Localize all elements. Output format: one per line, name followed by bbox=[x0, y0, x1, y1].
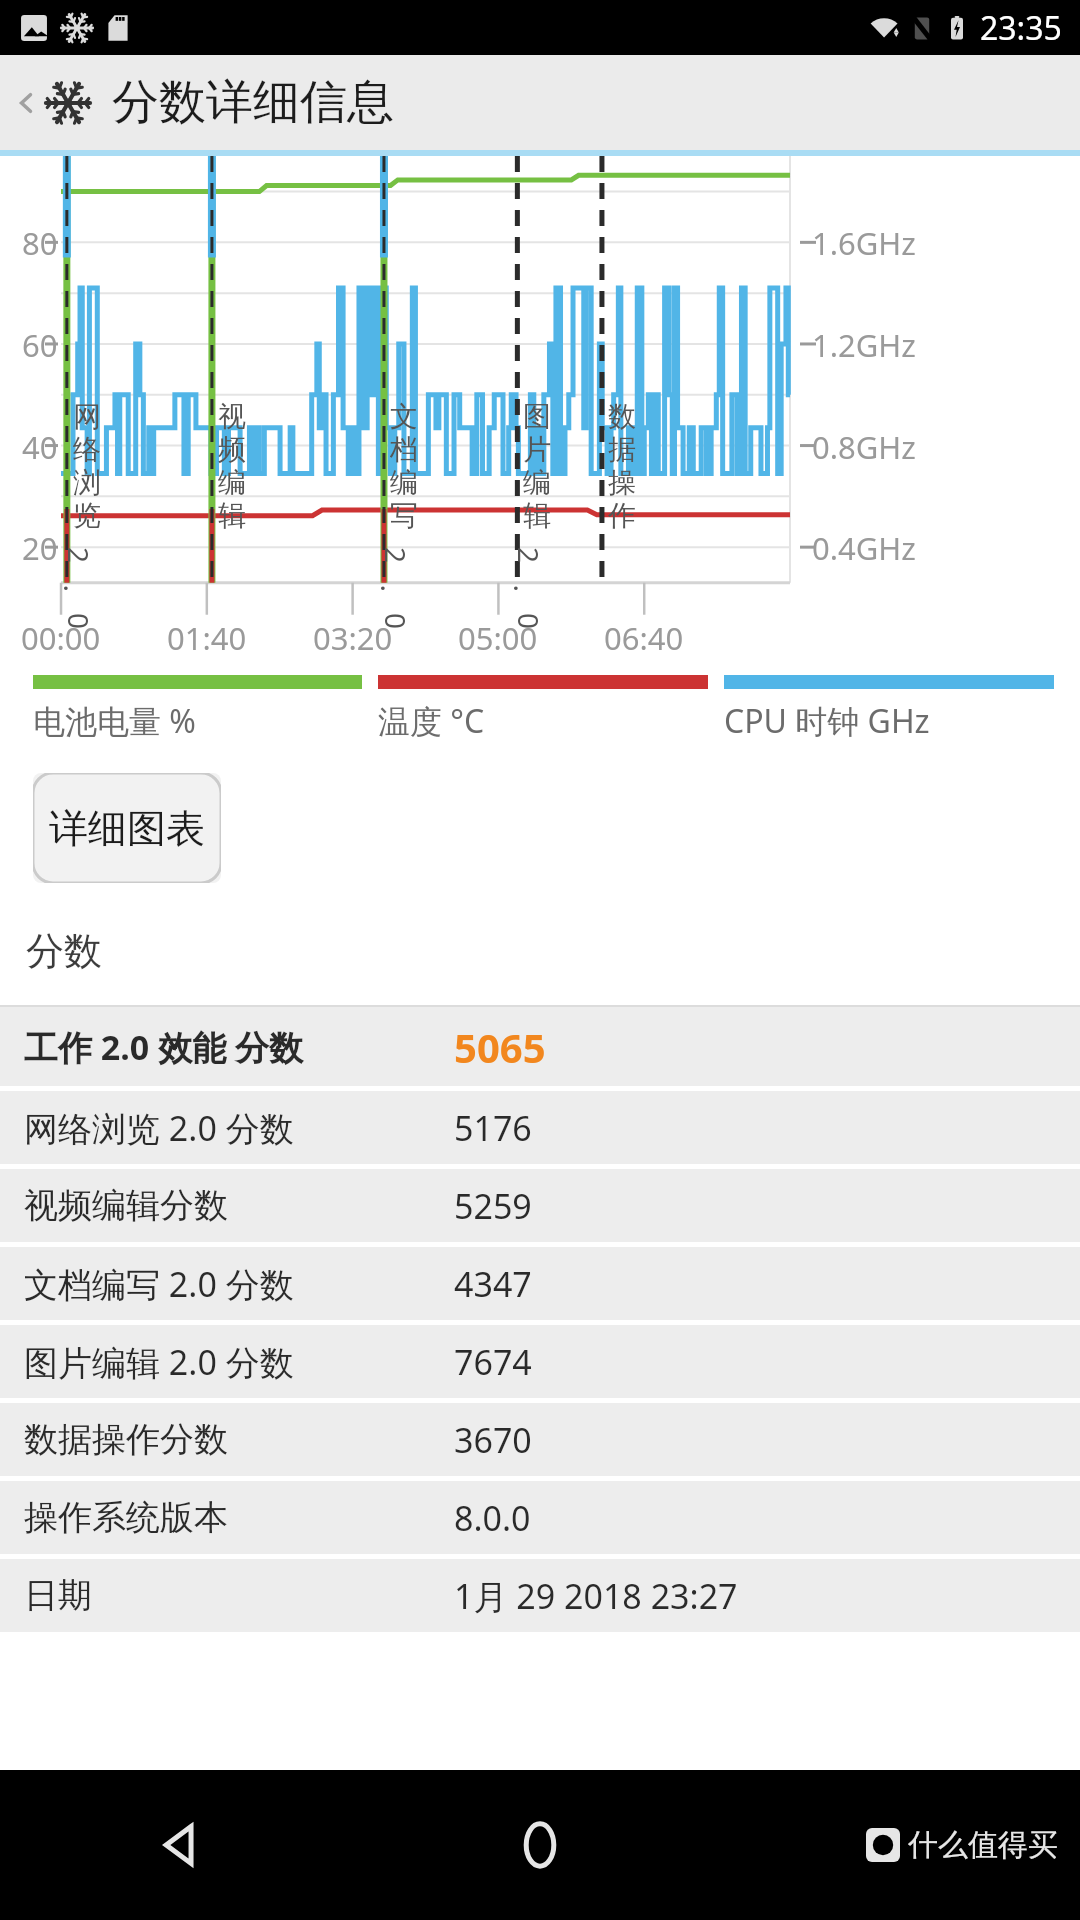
staticText: 片 bbox=[523, 432, 551, 465]
staticText: 辑 bbox=[523, 498, 551, 531]
staticText: 温度 °C bbox=[378, 699, 485, 743]
staticText: 05:00 bbox=[458, 617, 538, 659]
staticText: 数据操作分数 bbox=[24, 1418, 228, 1461]
staticText: 图片编辑 2.0 分数 bbox=[24, 1339, 294, 1385]
staticText: 电池电量 % bbox=[33, 699, 196, 743]
staticText: 0 bbox=[515, 613, 548, 630]
staticText: 2 bbox=[515, 547, 548, 564]
button[interactable]: Home bbox=[492, 1797, 588, 1893]
staticText: . bbox=[510, 584, 543, 592]
staticText: 档 bbox=[390, 432, 418, 465]
staticText: 分数详细信息 bbox=[112, 73, 394, 132]
staticText: 写 bbox=[390, 498, 418, 531]
button[interactable]: 详细图表 bbox=[33, 773, 221, 883]
staticText: 数 bbox=[608, 399, 636, 432]
button[interactable]: 日期 bbox=[0, 1559, 1080, 1632]
staticText: 7674 bbox=[454, 1339, 532, 1385]
staticText: . bbox=[60, 584, 93, 592]
staticText: 20 bbox=[22, 527, 58, 569]
staticText: 文 bbox=[390, 399, 418, 432]
staticText: . bbox=[377, 584, 410, 592]
staticText: 编 bbox=[390, 465, 418, 498]
staticText: 辑 bbox=[218, 498, 246, 531]
staticText: 作 bbox=[608, 498, 636, 531]
staticText: 2 bbox=[382, 547, 415, 564]
staticText: 视 bbox=[218, 399, 246, 432]
button[interactable]: 工作 2.0 效能 分数 bbox=[0, 1007, 1080, 1086]
staticText: 编 bbox=[218, 465, 246, 498]
staticText: 4347 bbox=[454, 1261, 532, 1307]
staticText: 浏 bbox=[73, 465, 101, 498]
staticText: 2 bbox=[65, 547, 98, 564]
staticText: 0 bbox=[65, 613, 98, 630]
button[interactable]: 操作系统版本 bbox=[0, 1481, 1080, 1554]
staticText: 络 bbox=[73, 432, 101, 465]
button[interactable]: Back bbox=[0, 55, 98, 150]
staticText: 日期 bbox=[24, 1574, 92, 1617]
staticText: 06:40 bbox=[604, 617, 684, 659]
staticText: 0 bbox=[382, 613, 415, 630]
staticText: 0.8GHz bbox=[812, 426, 916, 468]
staticText: CPU 时钟 GHz bbox=[724, 699, 930, 743]
staticText: 分数 bbox=[26, 927, 102, 975]
staticText: 5259 bbox=[454, 1183, 532, 1229]
staticText: 8.0.0 bbox=[454, 1495, 531, 1541]
staticText: 00:00 bbox=[21, 617, 101, 659]
staticText: 操 bbox=[608, 465, 636, 498]
staticText: 文档编写 2.0 分数 bbox=[24, 1261, 294, 1307]
staticText: 览 bbox=[73, 498, 101, 531]
button[interactable]: 网络浏览 2.0 分数 bbox=[0, 1091, 1080, 1164]
button[interactable]: Back bbox=[132, 1797, 228, 1893]
staticText: 1月 29 2018 23:27 bbox=[454, 1573, 738, 1619]
staticText: 0.4GHz bbox=[812, 527, 916, 569]
staticText: 详细图表 bbox=[49, 804, 205, 853]
staticText: 40 bbox=[22, 426, 58, 468]
staticText: 1.6GHz bbox=[812, 222, 916, 264]
staticText: 操作系统版本 bbox=[24, 1496, 228, 1539]
staticText: 3670 bbox=[454, 1417, 532, 1463]
staticText: 工作 2.0 效能 分数 bbox=[24, 1024, 303, 1070]
staticText: 5065 bbox=[454, 1020, 546, 1074]
staticText: 01:40 bbox=[167, 617, 247, 659]
staticText: 网 bbox=[73, 399, 101, 432]
staticText: 网络浏览 2.0 分数 bbox=[24, 1105, 294, 1151]
staticText: 什么值得买 bbox=[908, 1826, 1058, 1864]
staticText: 视频编辑分数 bbox=[24, 1184, 228, 1227]
staticText: 编 bbox=[523, 465, 551, 498]
button[interactable]: 文档编写 2.0 分数 bbox=[0, 1247, 1080, 1320]
staticText: 5176 bbox=[454, 1105, 532, 1151]
staticText: 60 bbox=[22, 324, 58, 366]
staticText: 图 bbox=[523, 399, 551, 432]
staticText: 据 bbox=[608, 432, 636, 465]
button[interactable]: 视频编辑分数 bbox=[0, 1169, 1080, 1242]
staticText: 23:35 bbox=[980, 6, 1062, 50]
staticText: 频 bbox=[218, 432, 246, 465]
staticText: 80 bbox=[22, 222, 58, 264]
staticText: 03:20 bbox=[313, 617, 393, 659]
staticText: 1.2GHz bbox=[812, 324, 916, 366]
button[interactable]: 数据操作分数 bbox=[0, 1403, 1080, 1476]
button[interactable]: 图片编辑 2.0 分数 bbox=[0, 1325, 1080, 1398]
